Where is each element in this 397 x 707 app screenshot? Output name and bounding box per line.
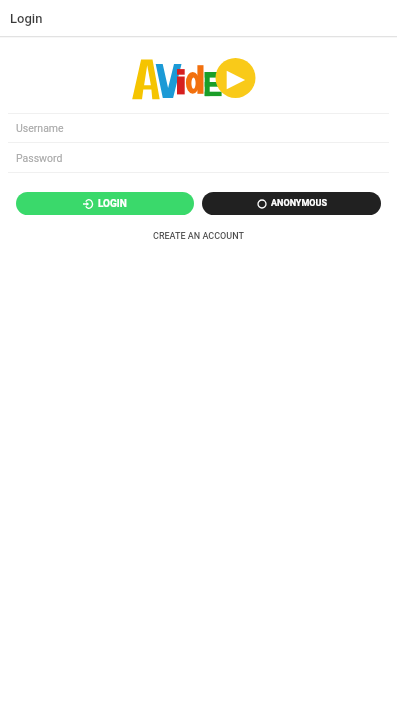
other: Login	[83, 199, 93, 209]
button[interactable]: Password	[0, 143, 397, 172]
staticText: Username	[16, 122, 64, 134]
other: Anonymous	[257, 199, 267, 209]
staticText: LOGIN	[98, 198, 127, 210]
staticText: Password	[16, 152, 63, 164]
staticText: CREATE AN ACCOUNT	[153, 231, 244, 242]
button[interactable]: Username	[0, 114, 397, 142]
staticText: ANONYMOUS	[271, 198, 327, 209]
button[interactable]: Anonymous	[202, 192, 381, 215]
staticText: Login	[10, 11, 43, 26]
button[interactable]: Login	[16, 192, 194, 215]
button[interactable]: CREATE AN ACCOUNT	[143, 228, 254, 245]
